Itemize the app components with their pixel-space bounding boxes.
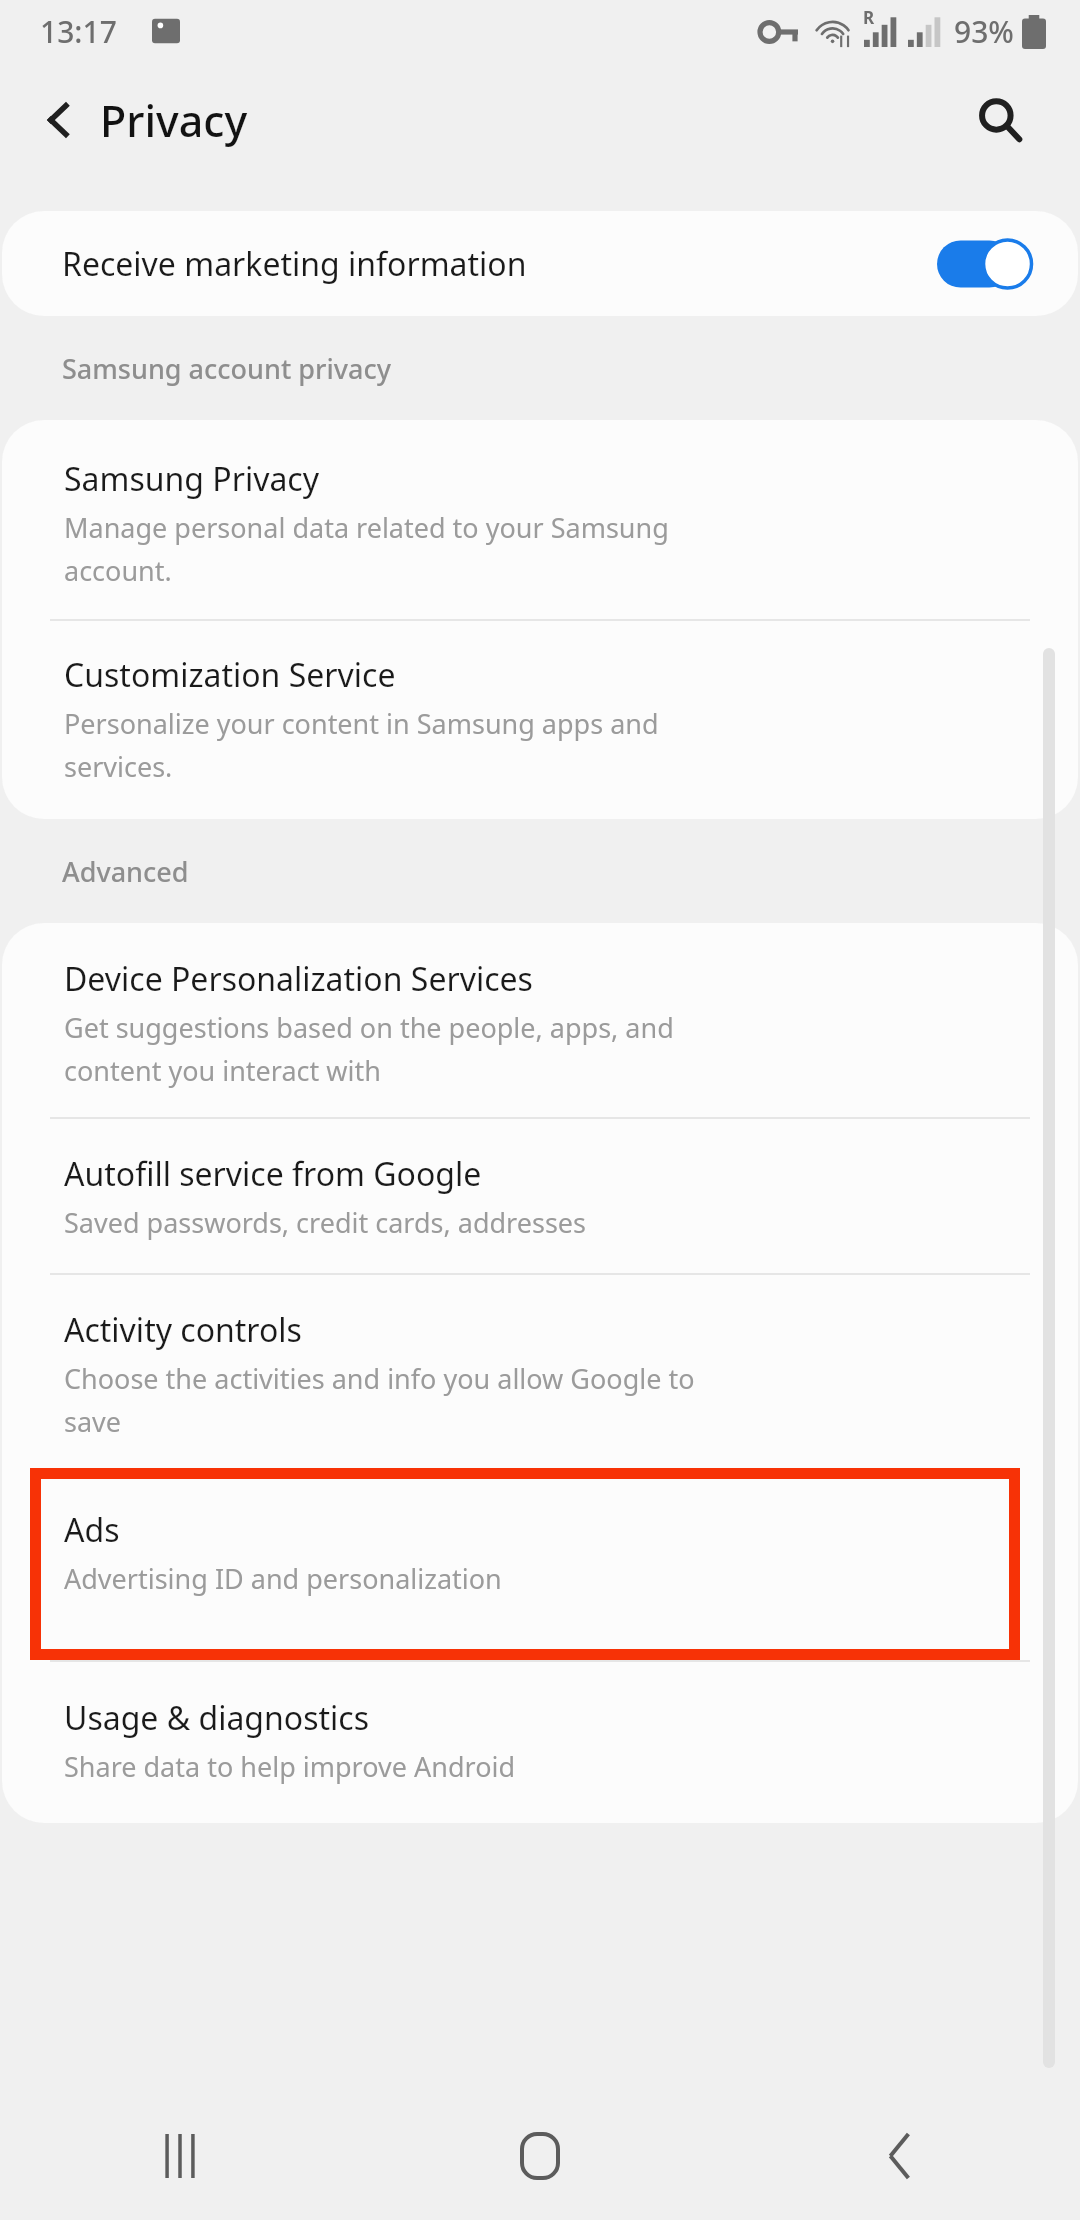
staticText: Customization Service — [64, 653, 396, 697]
staticText: Samsung Privacy — [64, 457, 320, 501]
button[interactable]: Receive marketing information — [2, 211, 1078, 316]
staticText: Advertising ID and personalization — [64, 1560, 502, 1597]
button[interactable]: Usage & diagnostics — [2, 1662, 1078, 1823]
staticText: Privacy — [100, 91, 248, 150]
staticText: Samsung account privacy — [62, 350, 391, 387]
staticText: Get suggestions based on the people, app… — [64, 1009, 674, 1089]
staticText: Share data to help improve Android — [64, 1748, 516, 1785]
staticText: Autofill service from Google — [64, 1152, 482, 1196]
button[interactable]: Back — [18, 78, 102, 162]
staticText: Personalize your content in Samsung apps… — [64, 705, 659, 785]
button[interactable]: Recent apps — [0, 2092, 360, 2220]
staticText: Activity controls — [64, 1308, 302, 1352]
button[interactable]: Receive marketing information — [937, 236, 1032, 292]
button[interactable]: Customization Service — [2, 621, 1078, 819]
staticText: 13:17 — [40, 11, 117, 52]
button[interactable]: Activity controls — [2, 1275, 1078, 1468]
staticText: R — [863, 6, 875, 29]
staticText: Advanced — [62, 853, 189, 890]
staticText: Receive marketing information — [62, 242, 937, 286]
staticText: Manage personal data related to your Sam… — [64, 509, 669, 589]
staticText: Device Personalization Services — [64, 957, 533, 1001]
button[interactable]: Device Personalization Services — [2, 923, 1078, 1117]
button[interactable]: Ads — [30, 1468, 1020, 1660]
button[interactable]: Home — [360, 2092, 720, 2220]
staticText: Saved passwords, credit cards, addresses — [64, 1204, 586, 1241]
button[interactable]: Search — [958, 78, 1042, 162]
staticText: Ads — [64, 1508, 120, 1552]
staticText: Usage & diagnostics — [64, 1696, 369, 1740]
button[interactable]: Autofill service from Google — [2, 1119, 1078, 1273]
button[interactable]: Back — [720, 2092, 1080, 2220]
staticText: 93% — [954, 11, 1014, 52]
button[interactable]: Samsung Privacy — [2, 420, 1078, 619]
staticText: Choose the activities and info you allow… — [64, 1360, 695, 1440]
